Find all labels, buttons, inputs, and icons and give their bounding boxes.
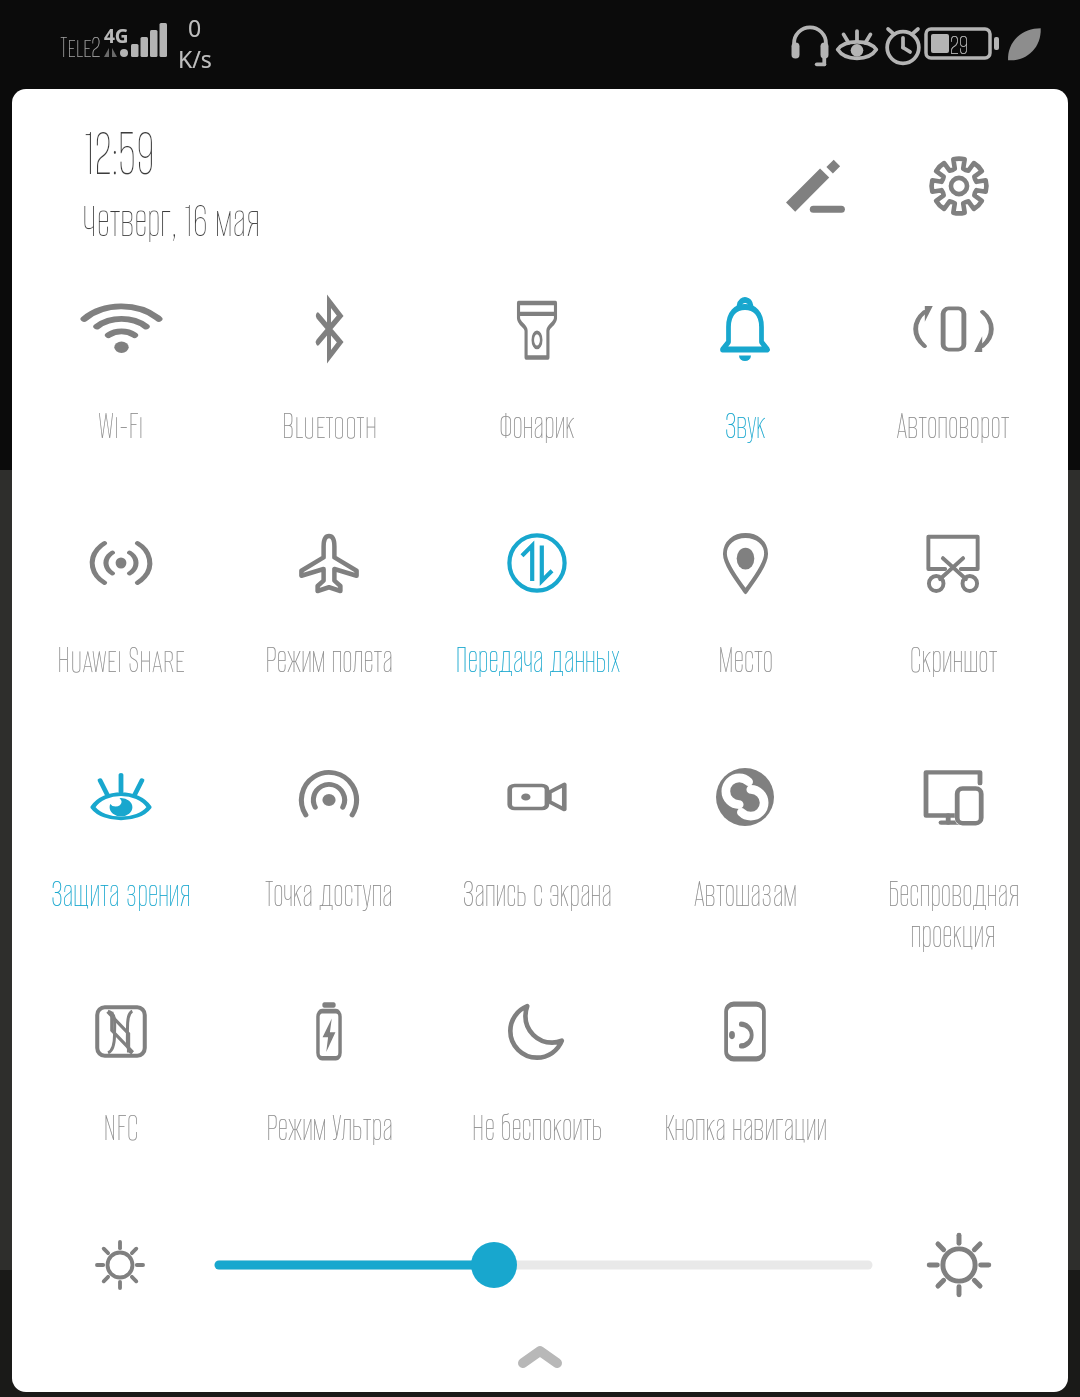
- button[interactable]: Edit: [766, 136, 866, 236]
- staticText: Автошазам: [694, 868, 797, 918]
- button[interactable]: [660, 712, 830, 882]
- button[interactable]: [660, 478, 830, 648]
- staticText: Не беспокоить: [471, 1102, 602, 1152]
- staticText: Bluetooth: [282, 400, 377, 450]
- staticText: 4G: [104, 23, 129, 49]
- button[interactable]: [868, 478, 1038, 648]
- staticText: 12:59: [84, 110, 155, 195]
- staticText: проекция: [910, 909, 995, 959]
- button[interactable]: [36, 946, 206, 1116]
- button[interactable]: [36, 712, 206, 882]
- staticText: 0: [188, 12, 202, 43]
- staticText: 29: [950, 27, 968, 63]
- staticText: Фонарик: [499, 400, 575, 450]
- staticText: Huawei Share: [57, 634, 185, 684]
- button[interactable]: [660, 244, 830, 414]
- button[interactable]: [36, 478, 206, 648]
- staticText: Место: [718, 634, 773, 684]
- staticText: Беспроводная: [888, 868, 1019, 918]
- staticText: Защита зрения: [51, 868, 191, 918]
- button[interactable]: [660, 946, 830, 1116]
- staticText: Передача данных: [455, 634, 620, 684]
- button[interactable]: [244, 712, 414, 882]
- button[interactable]: [244, 244, 414, 414]
- button[interactable]: [868, 712, 1038, 882]
- button[interactable]: Increase brightness: [904, 1210, 1014, 1320]
- staticText: Точка доступа: [265, 868, 393, 918]
- staticText: Tele2: [60, 26, 101, 67]
- staticText: Режим Ультра: [266, 1102, 393, 1152]
- button[interactable]: [244, 478, 414, 648]
- staticText: Режим полета: [265, 634, 393, 684]
- button[interactable]: Settings: [907, 134, 1011, 238]
- staticText: Кнопка навигации: [664, 1102, 827, 1152]
- button[interactable]: [452, 946, 622, 1116]
- button[interactable]: [452, 244, 622, 414]
- staticText: Wi-Fi: [98, 400, 144, 450]
- button[interactable]: [452, 712, 622, 882]
- staticText: Четверг, 16 мая: [82, 190, 260, 251]
- staticText: Запись с экрана: [463, 868, 612, 918]
- button[interactable]: [195, 1225, 895, 1305]
- staticText: K/s: [178, 43, 212, 74]
- staticText: Скриншот: [909, 634, 998, 684]
- button[interactable]: [868, 244, 1038, 414]
- staticText: NFC: [103, 1102, 139, 1152]
- staticText: Автоповорот: [896, 400, 1010, 450]
- button[interactable]: Decrease brightness: [70, 1215, 170, 1315]
- button[interactable]: [36, 244, 206, 414]
- button[interactable]: Collapse panel: [480, 1305, 600, 1392]
- staticText: Звук: [725, 400, 766, 450]
- button[interactable]: [244, 946, 414, 1116]
- button[interactable]: [452, 478, 622, 648]
